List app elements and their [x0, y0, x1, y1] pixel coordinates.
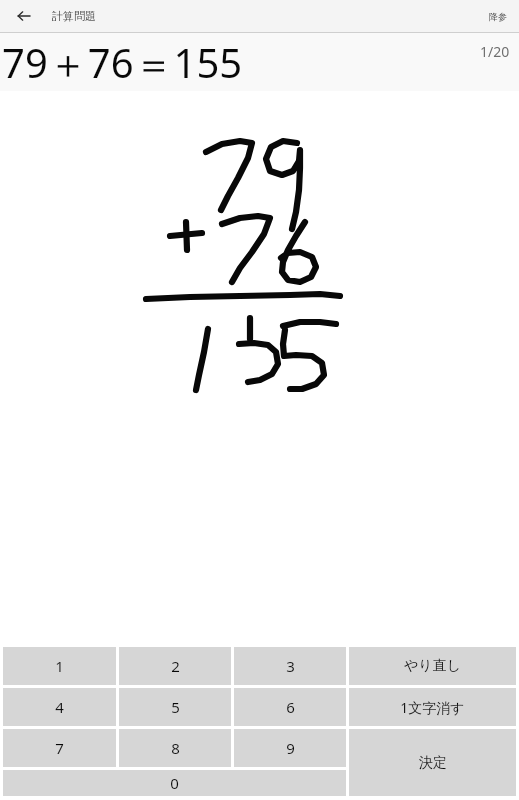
- staticText: 9: [286, 738, 295, 758]
- button[interactable]: 3: [234, 647, 346, 685]
- staticText: 1文字消す: [400, 698, 465, 717]
- staticText: 79＋76＝155: [2, 35, 243, 90]
- button[interactable]: 2: [119, 647, 231, 685]
- button[interactable]: 0: [3, 770, 346, 796]
- staticText: 8: [171, 738, 180, 758]
- button[interactable]: 1文字消す: [349, 688, 516, 726]
- staticText: 決定: [419, 754, 447, 772]
- button[interactable]: やり直し: [349, 647, 516, 685]
- staticText: 0: [170, 773, 179, 793]
- staticText: やり直し: [404, 657, 461, 675]
- button[interactable]: 9: [234, 729, 346, 767]
- button[interactable]: 1: [3, 647, 116, 685]
- button[interactable]: 6: [234, 688, 346, 726]
- button[interactable]: Back: [8, 0, 40, 32]
- button[interactable]: 7: [3, 729, 116, 767]
- staticText: 3: [286, 656, 295, 676]
- staticText: 1: [55, 656, 64, 676]
- staticText: 5: [171, 697, 180, 717]
- staticText: 降参: [489, 11, 507, 22]
- button[interactable]: 8: [119, 729, 231, 767]
- staticText: 計算問題: [52, 9, 96, 23]
- button[interactable]: 5: [119, 688, 231, 726]
- staticText: 1/20: [480, 42, 510, 61]
- staticText: 7: [55, 738, 64, 758]
- button[interactable]: 降参: [477, 0, 519, 32]
- button[interactable]: 決定: [349, 729, 516, 796]
- staticText: 2: [171, 656, 180, 676]
- staticText: 4: [55, 697, 64, 717]
- staticText: 6: [286, 697, 295, 717]
- button[interactable]: 4: [3, 688, 116, 726]
